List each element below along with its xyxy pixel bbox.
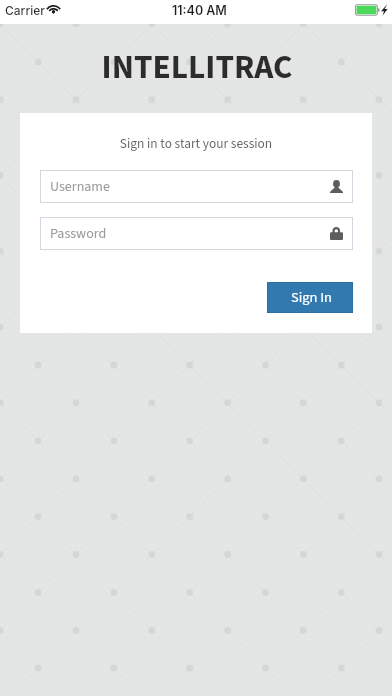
staticText: INTELLITRAC [1,44,392,92]
staticText: Password [50,224,107,244]
other: Wi-Fi signal [48,5,59,14]
other: Lock icon [330,227,343,240]
other: User icon [330,180,343,193]
staticText: 11:40 AM [172,3,227,18]
staticText: Sign In [291,287,332,308]
button[interactable]: Username [40,170,353,203]
button[interactable]: Sign In [268,283,352,312]
staticText: Sign in to start your session [20,134,372,153]
button[interactable]: Password [40,217,353,250]
staticText: Username [50,177,110,197]
staticText: Carrier [5,3,45,18]
other: Battery charging [354,4,388,16]
